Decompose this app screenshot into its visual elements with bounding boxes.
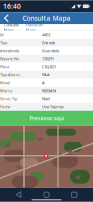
staticText: Movil xyxy=(0,80,10,85)
staticText: Placa xyxy=(0,64,9,69)
staticText: Consulta Mapa xyxy=(3,22,18,32)
button[interactable]: Consulta Mapa xyxy=(0,24,22,30)
staticText: Ubicacion Mapa xyxy=(25,22,42,32)
button[interactable]: Presionar aqui xyxy=(0,111,93,126)
staticText: Nitel xyxy=(42,96,50,101)
staticText: Tipo xyxy=(0,40,7,45)
staticText: NISSAN xyxy=(42,88,56,93)
staticText: 130291 xyxy=(42,56,54,61)
staticText: Entrada xyxy=(42,40,55,45)
button[interactable]: Back xyxy=(10,189,28,201)
staticText: CBJ-821 xyxy=(42,64,56,69)
staticText: A xyxy=(42,80,45,85)
staticText: Una Tajertas xyxy=(42,104,64,109)
staticText: Reporte No xyxy=(0,56,19,61)
button[interactable]: Ubicacion Mapa xyxy=(22,24,46,30)
staticText: Consulta Mapa xyxy=(22,14,70,23)
staticText: Marca xyxy=(0,88,12,93)
staticText: Tipo Alarm xyxy=(0,72,20,77)
button[interactable]: Recents xyxy=(65,189,83,201)
staticText: Guardado xyxy=(42,48,59,53)
staticText: Presionar aqui xyxy=(29,115,63,122)
staticText: Atendiendo xyxy=(0,48,19,53)
staticText: PAA xyxy=(42,72,50,77)
staticText: Servic Tip xyxy=(0,96,17,101)
staticText: Fecha xyxy=(0,104,10,109)
staticText: Id xyxy=(0,32,3,37)
button[interactable]: Home xyxy=(37,189,55,201)
staticText: 16:40 xyxy=(3,2,21,11)
button[interactable]: Back xyxy=(0,12,13,24)
staticText: 4453 xyxy=(42,32,50,37)
